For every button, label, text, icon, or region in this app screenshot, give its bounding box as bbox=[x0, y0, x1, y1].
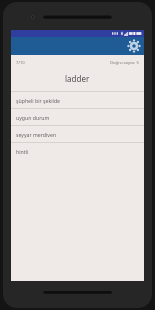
button[interactable]: hintli bbox=[11, 143, 144, 159]
button[interactable]: seyyar merdiven bbox=[11, 126, 144, 142]
staticText: seyyar merdiven bbox=[16, 131, 57, 138]
staticText: uygun durum bbox=[16, 114, 50, 121]
staticText: hintli bbox=[16, 148, 29, 155]
button[interactable]: Settings bbox=[127, 39, 141, 53]
button[interactable]: şüpheli bir şekilde bbox=[11, 92, 144, 108]
staticText: ladder bbox=[65, 73, 90, 84]
staticText: Doğru sayısı: 5 bbox=[110, 60, 139, 66]
staticText: şüpheli bir şekilde bbox=[16, 97, 61, 104]
staticText: 7/10 bbox=[16, 60, 25, 66]
button[interactable]: uygun durum bbox=[11, 109, 144, 125]
